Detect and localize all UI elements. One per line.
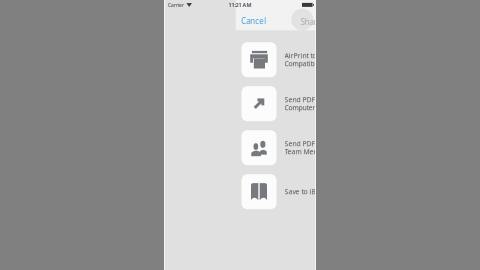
staticText: Computer <box>284 103 315 112</box>
staticText: Send PDF to <box>284 95 322 104</box>
button[interactable]: Save to iBooks <box>241 170 351 214</box>
staticText: AirPrint to <box>284 51 316 60</box>
button[interactable]: Share <box>291 9 313 31</box>
staticText: Compatible Printer <box>284 59 344 68</box>
button[interactable]: AirPrint to <box>241 38 351 82</box>
staticText: Cancel <box>241 15 266 26</box>
staticText: Send PDF to <box>284 139 322 148</box>
staticText: 11:21 AM <box>228 1 251 9</box>
staticText: Share <box>300 16 321 27</box>
button[interactable]: Send PDF to <box>241 82 351 126</box>
staticText: Carrier <box>168 1 184 9</box>
button[interactable]: Cancel <box>238 10 270 31</box>
staticText: Save to iBooks <box>284 187 330 196</box>
staticText: Team Members <box>284 147 333 156</box>
button[interactable]: Send PDF to <box>241 126 351 170</box>
